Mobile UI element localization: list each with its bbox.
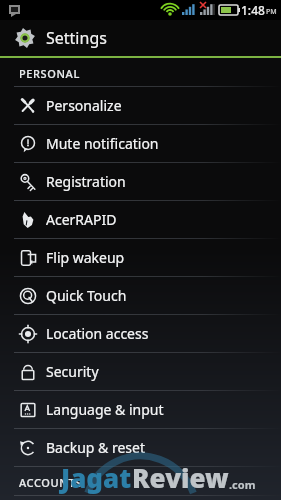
button[interactable]: Backup & reset	[0, 429, 281, 467]
staticText: Quick Touch	[46, 286, 127, 305]
staticText: PERSONAL	[19, 66, 80, 81]
staticText: Personalize	[46, 96, 122, 115]
button[interactable]: AcerRAPID	[0, 201, 281, 239]
button[interactable]: Location access	[0, 315, 281, 353]
button[interactable]: Quick Touch	[0, 277, 281, 315]
staticText: Backup & reset	[46, 438, 145, 457]
button[interactable]: Personalize	[0, 87, 281, 125]
staticText: Security	[46, 362, 99, 381]
button[interactable]: Mute notification	[0, 125, 281, 163]
button[interactable]: Flip wakeup	[0, 239, 281, 277]
staticText: .com	[229, 477, 256, 492]
button[interactable]: Registration	[0, 163, 281, 201]
staticText: Registration	[46, 172, 126, 191]
staticText: Location access	[46, 324, 149, 343]
staticText: ACCOUNTS	[19, 475, 82, 490]
staticText: Flip wakeup	[46, 248, 125, 267]
staticText: Mute notification	[46, 134, 159, 153]
staticText: Language & input	[46, 400, 164, 419]
staticText: Settings	[46, 27, 107, 49]
staticText: Jagat	[61, 460, 132, 495]
staticText: PM	[266, 7, 277, 17]
button[interactable]: Security	[0, 353, 281, 391]
staticText: AcerRAPID	[46, 210, 117, 229]
staticText: 1:48	[241, 2, 265, 18]
staticText: Review	[132, 460, 229, 495]
button[interactable]: Language & input	[0, 391, 281, 429]
